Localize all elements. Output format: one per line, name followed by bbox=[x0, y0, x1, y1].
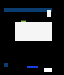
button[interactable] bbox=[4, 8, 52, 12]
